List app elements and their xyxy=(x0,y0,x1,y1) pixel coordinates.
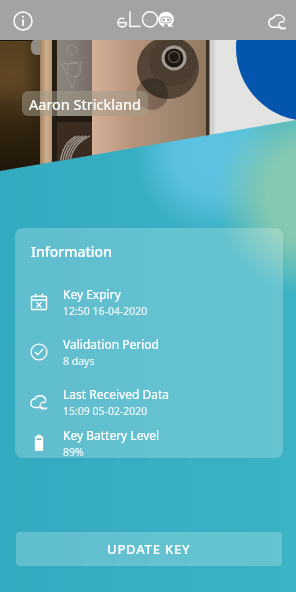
staticText: 15:09 05-02-2020 xyxy=(63,404,148,418)
button[interactable]: Validation Period xyxy=(15,327,283,377)
button[interactable]: Key Expiry xyxy=(15,277,283,327)
button[interactable]: Sync xyxy=(258,0,296,40)
staticText: 89% xyxy=(63,445,84,458)
button[interactable]: Information xyxy=(0,0,45,40)
button[interactable]: Key Battery Level xyxy=(15,427,283,458)
staticText: Key Battery Level xyxy=(63,427,160,443)
staticText: 12:50 16-04-2020 xyxy=(63,304,148,318)
staticText: Validation Period xyxy=(63,336,159,352)
staticText: Information xyxy=(31,242,112,261)
staticText: Key Expiry xyxy=(63,286,121,302)
staticText: UPDATE KEY xyxy=(107,540,191,558)
staticText: 8 days xyxy=(63,354,95,368)
staticText: Aaron Strickland xyxy=(29,94,141,114)
staticText: Last Received Data xyxy=(63,386,169,402)
button[interactable]: UPDATE KEY xyxy=(16,532,282,566)
button[interactable]: Last Received Data xyxy=(15,377,283,427)
